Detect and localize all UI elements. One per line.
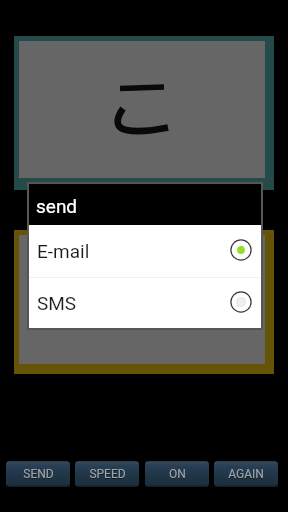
button[interactable]: SEND xyxy=(6,461,70,487)
button[interactable]: E-mail xyxy=(29,225,261,277)
staticText: ON xyxy=(169,467,186,481)
staticText: SMS xyxy=(37,292,77,314)
button[interactable]: ON xyxy=(145,461,209,487)
staticText: SPEED xyxy=(89,467,126,481)
staticText: E-mail xyxy=(37,240,90,262)
staticText: SPEED xyxy=(89,468,126,482)
button[interactable]: SMS xyxy=(29,278,261,328)
button[interactable]: AGAIN xyxy=(214,461,278,487)
staticText: AGAIN xyxy=(228,467,264,481)
staticText: AGAIN xyxy=(228,468,264,482)
staticText: SEND xyxy=(23,468,54,482)
button[interactable]: SPEED xyxy=(75,461,139,487)
staticText: send xyxy=(36,195,78,217)
staticText: ON xyxy=(169,468,186,482)
staticText: SEND xyxy=(23,467,54,481)
